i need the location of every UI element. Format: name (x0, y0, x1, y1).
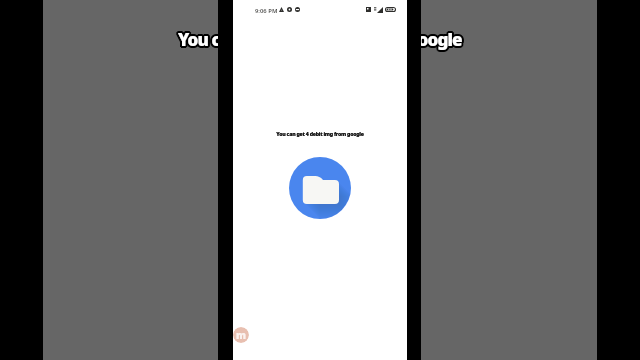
button[interactable]: Creator watermark (233, 327, 249, 343)
button[interactable]: Files by Google (289, 157, 351, 219)
staticText: You can get 4 debit img from google (276, 130, 364, 137)
staticText: You can get 4 debit img from google (178, 26, 462, 49)
staticText: m (236, 328, 246, 342)
staticText: You can get 4 debit img from google (176, 28, 460, 51)
staticText: You can get 4 debit img from google (276, 130, 364, 137)
staticText: You can get 4 debit img from google (180, 28, 464, 51)
staticText: You can get 4 debit img from google (177, 27, 461, 50)
staticText: You can get 4 debit img from google (179, 30, 463, 53)
staticText: You can get 4 debit img from google (179, 27, 463, 50)
staticText: You can get 4 debit img from google (276, 130, 364, 137)
staticText: You can get 4 debit img from google (177, 30, 461, 53)
staticText: You can get 4 debit img from google (179, 26, 463, 49)
staticText: You can get 4 debit img from google (179, 29, 463, 52)
staticText: You can get 4 debit img from google (176, 27, 460, 50)
staticText: You can get 4 debit img from google (177, 29, 461, 52)
staticText: You can get 4 debit img from google (176, 29, 460, 52)
staticText: You can get 4 debit img from google (177, 26, 461, 49)
staticText: 9:06 PM (255, 7, 278, 15)
staticText: You can get 4 debit img from google (178, 28, 462, 51)
staticText: You can get 4 debit img from google (180, 27, 464, 50)
button[interactable]: Status bar (233, 0, 407, 18)
staticText: You can get 4 debit img from google (178, 30, 462, 53)
staticText: You can get 4 debit img from google (180, 29, 464, 52)
